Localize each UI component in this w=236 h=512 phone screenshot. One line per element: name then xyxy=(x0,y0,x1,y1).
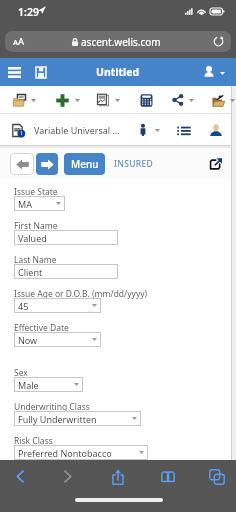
button[interactable]: Previous xyxy=(10,153,34,175)
button[interactable]: Account xyxy=(198,61,220,83)
other: Reload xyxy=(213,36,224,47)
button[interactable]: Bookmarks xyxy=(153,462,183,491)
button[interactable]: Share xyxy=(167,89,189,111)
button[interactable]: Fully Underwritten xyxy=(14,411,141,426)
button[interactable]: MA xyxy=(14,196,65,211)
button[interactable]: Now xyxy=(14,332,101,347)
staticText: Last Name xyxy=(14,254,57,266)
staticText: INSURED xyxy=(114,158,153,170)
staticText: Untitled xyxy=(96,65,140,79)
staticText: Valued xyxy=(18,232,47,244)
staticText: MA xyxy=(18,198,32,210)
staticText: ᴀA xyxy=(13,35,25,48)
staticText: Client xyxy=(18,266,43,278)
button[interactable]: Share xyxy=(103,462,133,491)
staticText: 45 xyxy=(18,300,29,312)
button[interactable]: Menu xyxy=(3,61,25,83)
staticText: Underwriting Class xyxy=(14,401,90,413)
button[interactable]: Preferred Nontobacco xyxy=(14,445,148,460)
button[interactable]: Address bar xyxy=(5,31,231,52)
button[interactable]: Back xyxy=(5,462,35,491)
button[interactable]: Next xyxy=(36,153,58,175)
button[interactable]: Male xyxy=(14,377,83,392)
button[interactable]: Calculate xyxy=(135,89,157,111)
button[interactable]: Open xyxy=(8,89,30,111)
staticText: Preferred Nontobacco xyxy=(18,447,112,459)
button[interactable]: Cases xyxy=(207,89,229,111)
button[interactable]: 45 xyxy=(14,298,101,313)
button[interactable]: Menu xyxy=(64,153,105,175)
staticText: Fully Underwritten xyxy=(18,413,97,425)
button[interactable]: Valued xyxy=(14,230,118,245)
staticText: Menu xyxy=(71,157,99,171)
staticText: First Name xyxy=(14,220,58,232)
button[interactable]: Save xyxy=(30,61,52,83)
button[interactable]: Tabs xyxy=(202,462,232,491)
staticText: Variable Universal … xyxy=(34,124,120,136)
staticText: Sex xyxy=(14,367,28,379)
button[interactable]: Report xyxy=(92,89,114,111)
staticText: 1:29 xyxy=(18,5,39,19)
staticText: Male xyxy=(18,379,39,391)
staticText: Issue Age or D.O.B. (mm/dd/yyyy) xyxy=(14,288,148,300)
button[interactable]: Insured xyxy=(132,119,154,141)
button[interactable]: List xyxy=(173,119,195,141)
button[interactable]: Forward xyxy=(53,462,83,491)
button[interactable]: Product info xyxy=(7,119,29,141)
button[interactable]: Open in new window xyxy=(207,156,223,172)
button[interactable]: Client xyxy=(14,264,118,279)
staticText: Effective Date xyxy=(14,322,69,334)
button[interactable]: New xyxy=(51,89,73,111)
staticText: ascent.welis.com xyxy=(81,35,161,49)
button[interactable]: Profile xyxy=(205,119,227,141)
staticText: Issue State xyxy=(14,186,58,198)
staticText: Risk Class xyxy=(14,435,53,447)
staticText: Now xyxy=(18,334,38,346)
